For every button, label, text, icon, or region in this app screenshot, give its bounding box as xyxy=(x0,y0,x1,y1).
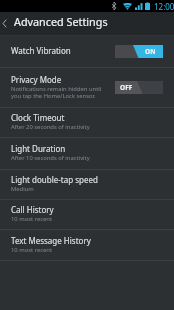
staticText: Clock Timeout xyxy=(11,112,65,123)
button[interactable]: Light double-tap speed xyxy=(0,170,174,199)
button[interactable]: Navigate up xyxy=(0,12,174,35)
staticText: Call History xyxy=(11,204,54,215)
button[interactable]: Clock Timeout xyxy=(0,108,174,137)
button[interactable]: Switch off xyxy=(115,81,163,94)
staticText: Advanced Settings xyxy=(14,14,108,29)
button[interactable]: Light Duration xyxy=(0,138,174,169)
staticText: 10 most recent xyxy=(11,246,53,254)
button[interactable]: Text Message History xyxy=(0,230,174,260)
staticText: 10 most recent xyxy=(11,215,53,223)
button[interactable]: Switch on xyxy=(115,45,163,58)
button[interactable]: Watch Vibration xyxy=(0,37,174,67)
staticText: After 10 seconds of inactivity xyxy=(11,154,90,162)
staticText: After 20 seconds of inactivity xyxy=(11,123,90,131)
staticText: Privacy Mode xyxy=(11,74,62,85)
staticText: Light double-tap speed xyxy=(11,174,98,185)
staticText: ON xyxy=(145,47,156,56)
staticText: Watch Vibration xyxy=(11,45,71,56)
staticText: 12:00 xyxy=(154,1,174,12)
staticText: OFF xyxy=(120,83,133,92)
staticText: Medium xyxy=(11,185,34,193)
button[interactable]: Call History xyxy=(0,200,174,229)
staticText: Notifications remain hidden until you ta… xyxy=(11,85,102,100)
staticText: Light Duration xyxy=(11,143,66,154)
staticText: Text Message History xyxy=(11,235,91,246)
button[interactable]: Privacy Mode xyxy=(0,68,174,107)
